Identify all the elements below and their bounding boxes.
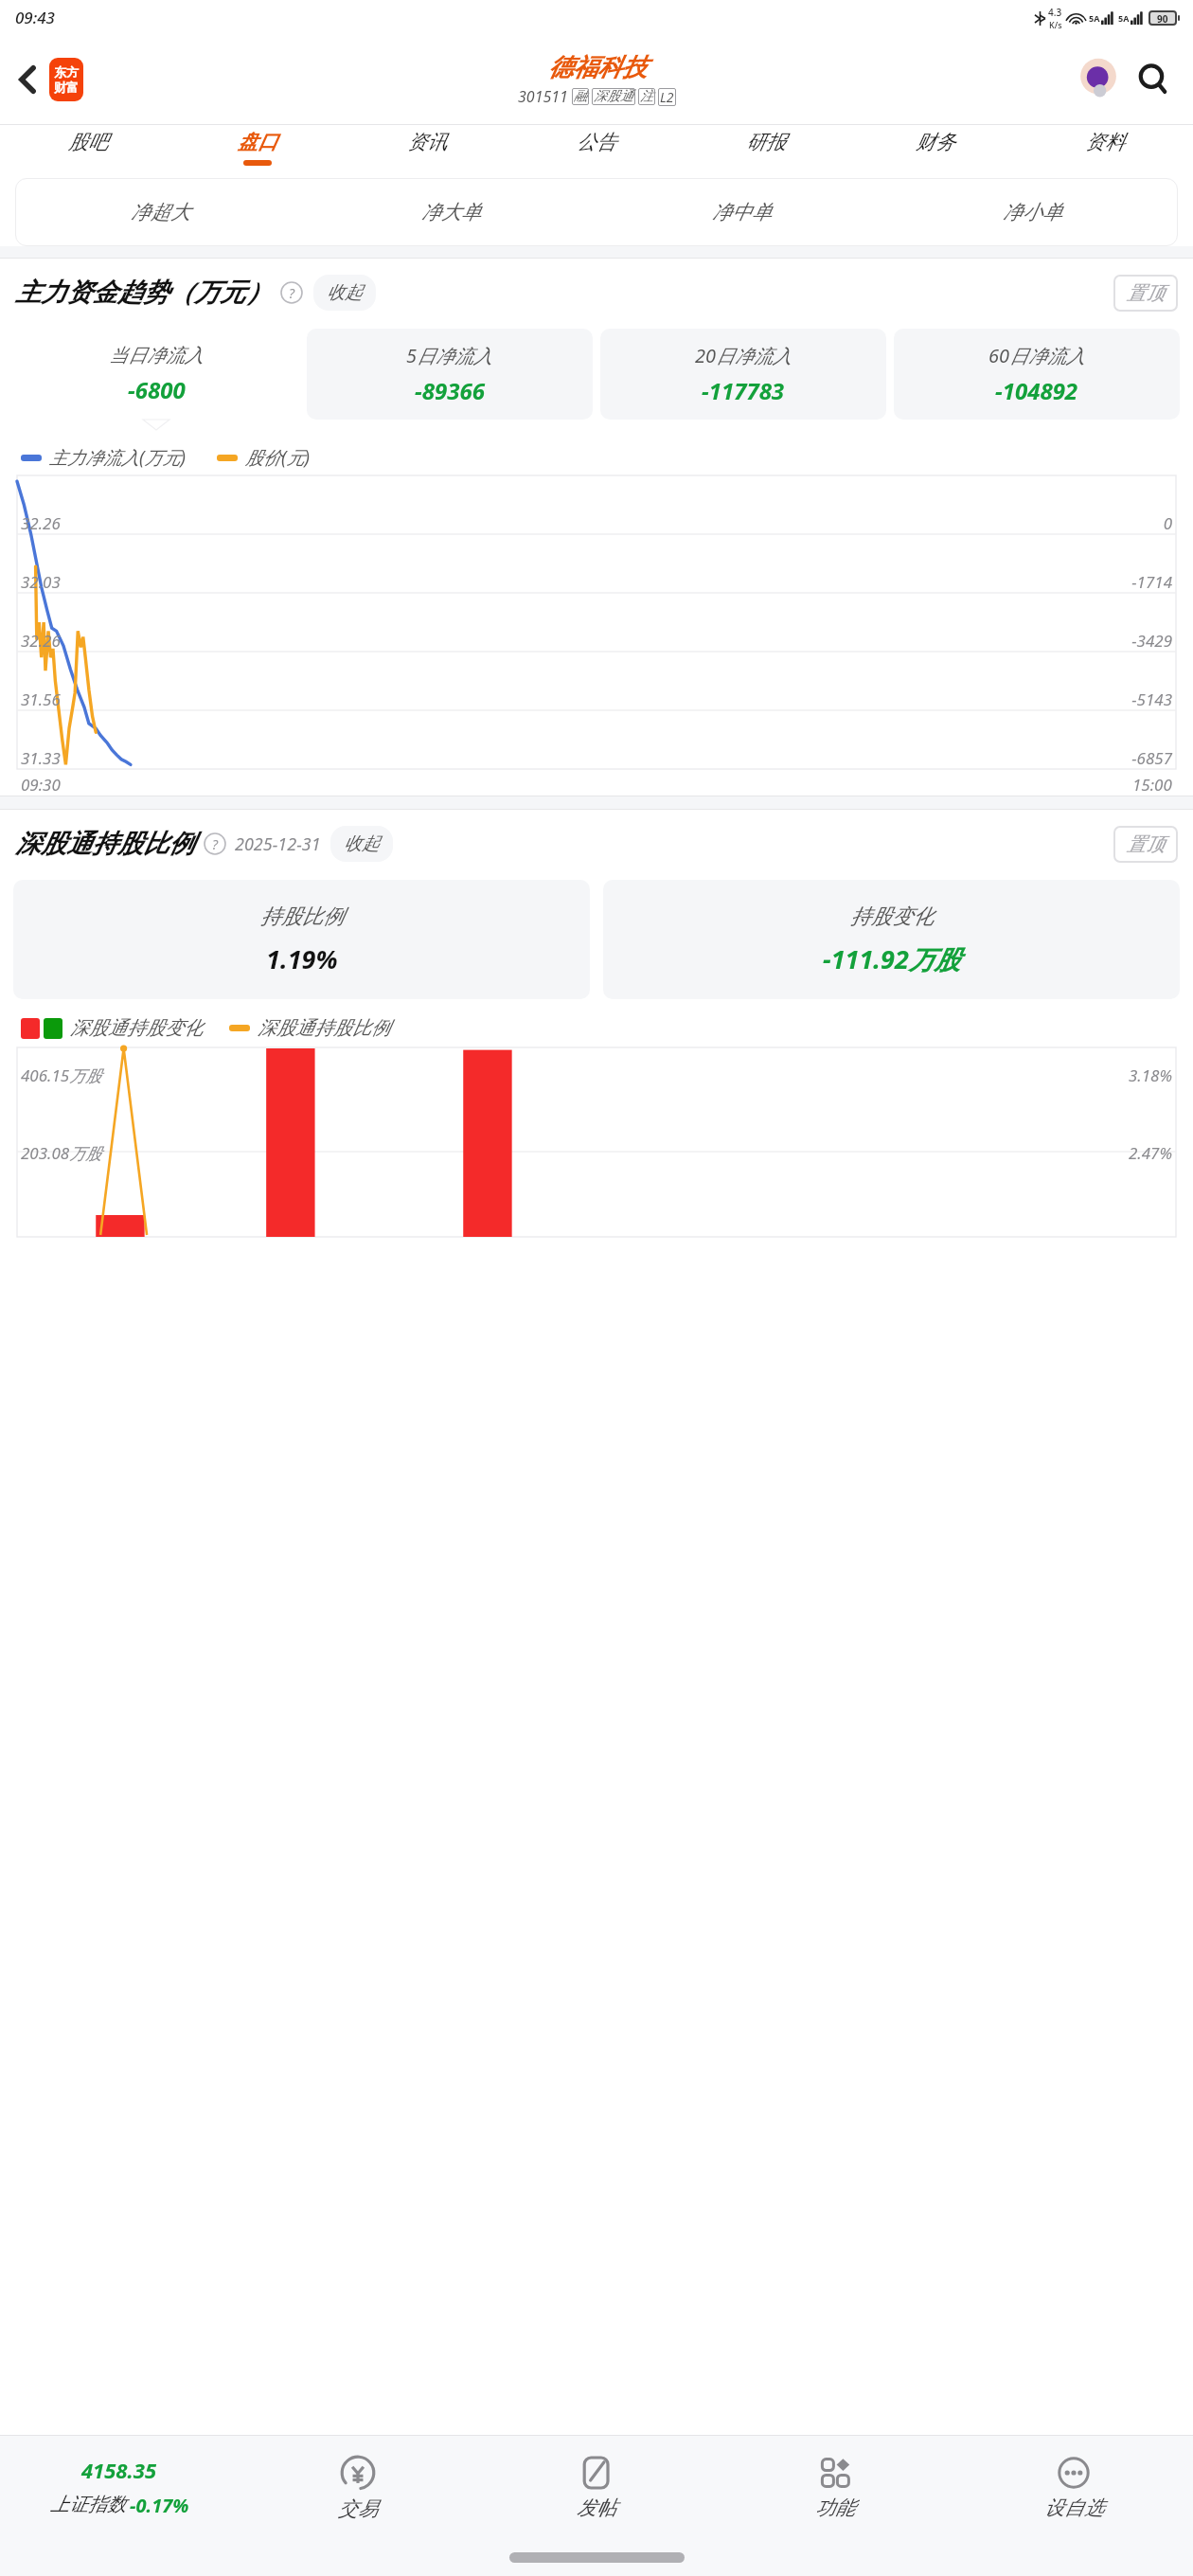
button[interactable]: 功能: [716, 2436, 954, 2538]
staticText: 4.3: [1048, 6, 1062, 19]
staticText: 交易: [338, 2496, 378, 2521]
staticText: 净小单: [1003, 200, 1062, 224]
button[interactable]: 盘口: [172, 125, 342, 178]
staticText: 2.47%: [1128, 1142, 1172, 1164]
button[interactable]: 资讯: [342, 125, 511, 178]
staticText: 研报: [746, 130, 786, 154]
staticText: 公告: [577, 130, 616, 154]
staticText: 5A: [1089, 12, 1100, 24]
staticText: 5日净流入: [406, 343, 493, 368]
button[interactable]: 收起: [313, 275, 376, 311]
staticText: -5143: [1131, 689, 1172, 710]
staticText: 持股比例: [260, 903, 344, 930]
staticText: 32.26: [21, 512, 61, 534]
staticText: 406.15万股: [21, 1064, 102, 1086]
button[interactable]: 5日净流入: [307, 329, 593, 420]
staticText: -111.92万股: [823, 941, 960, 976]
button[interactable]: 净小单: [887, 178, 1178, 246]
staticText: 置顶: [1127, 832, 1165, 856]
staticText: 3.18%: [1128, 1064, 1172, 1086]
staticText: 301511: [518, 86, 568, 107]
staticText: 东方: [54, 64, 79, 80]
staticText: 2025-12-31: [235, 832, 321, 856]
staticText: 主力资金趋势（万元）: [15, 277, 271, 309]
button[interactable]: 发帖: [477, 2436, 716, 2538]
staticText: 15:00: [1132, 774, 1172, 796]
staticText: 德福科技: [548, 52, 647, 83]
staticText: -117783: [702, 375, 785, 406]
staticText: 资讯: [407, 130, 447, 154]
staticText: 主力净流入(万元): [49, 445, 187, 470]
button[interactable]: 资料: [1020, 125, 1189, 178]
button[interactable]: 置顶: [1113, 275, 1178, 312]
button[interactable]: Assistant: [1076, 57, 1121, 102]
staticText: 31.33: [21, 747, 61, 769]
staticText: -3429: [1131, 630, 1172, 652]
button[interactable]: 持股变化: [603, 880, 1180, 999]
staticText: 股价(元): [245, 445, 311, 470]
button[interactable]: 净中单: [596, 178, 887, 246]
button[interactable]: 净大单: [306, 178, 596, 246]
staticText: 32.26: [21, 630, 61, 652]
button[interactable]: Search: [1131, 57, 1176, 102]
staticText: 持股变化: [850, 903, 934, 930]
staticText: 深股通持股变化: [70, 1016, 203, 1040]
button[interactable]: Help: [203, 832, 227, 856]
staticText: 功能: [815, 2495, 855, 2520]
staticText: -1714: [1131, 571, 1172, 593]
staticText: 90: [1157, 12, 1168, 24]
staticText: 融: [574, 88, 587, 105]
staticText: 收起: [344, 832, 380, 855]
button[interactable]: 60日净流入: [894, 329, 1180, 420]
button[interactable]: 股吧: [4, 125, 172, 178]
staticText: 发帖: [577, 2495, 616, 2520]
button[interactable]: 公告: [511, 125, 681, 178]
staticText: -104892: [995, 375, 1078, 406]
staticText: 4158.35: [81, 2456, 157, 2484]
staticText: 60日净流入: [988, 343, 1086, 368]
staticText: 财富: [54, 80, 79, 95]
button[interactable]: 置顶: [1113, 826, 1178, 863]
staticText: 09:30: [21, 774, 61, 796]
staticText: 203.08万股: [21, 1142, 102, 1164]
button[interactable]: 设自选: [954, 2436, 1193, 2538]
button[interactable]: 20日净流入: [600, 329, 886, 420]
staticText: -0.17%: [130, 2493, 189, 2518]
other: Back: [17, 63, 38, 97]
staticText: 20日净流入: [695, 343, 792, 368]
button[interactable]: 收起: [330, 826, 393, 862]
button[interactable]: 当日净流入: [13, 329, 299, 420]
staticText: 净超大: [131, 200, 190, 224]
staticText: 0: [1163, 512, 1172, 534]
staticText: 财务: [916, 130, 955, 154]
staticText: 深股通持股比例: [15, 828, 194, 860]
staticText: 收起: [327, 281, 363, 304]
button[interactable]: Help: [279, 280, 304, 305]
button[interactable]: 净超大: [15, 178, 306, 246]
staticText: ?: [212, 835, 219, 853]
staticText: 设自选: [1044, 2495, 1104, 2520]
staticText: -6800: [128, 374, 186, 405]
button[interactable]: 研报: [681, 125, 850, 178]
button[interactable]: 4158.35: [0, 2436, 239, 2538]
button[interactable]: 财务: [850, 125, 1020, 178]
button[interactable]: Back: [13, 54, 87, 105]
staticText: 1.19%: [266, 941, 338, 976]
staticText: 资料: [1085, 130, 1125, 154]
button[interactable]: 交易: [239, 2436, 477, 2538]
staticText: 09:43: [15, 7, 55, 28]
staticText: 5A: [1118, 12, 1130, 24]
staticText: 注: [640, 88, 653, 105]
staticText: 净大单: [421, 200, 481, 224]
staticText: 深股通持股比例: [258, 1016, 390, 1040]
staticText: K/s: [1049, 19, 1062, 30]
staticText: 上证指数: [50, 2493, 126, 2516]
button[interactable]: 持股比例: [13, 880, 590, 999]
staticText: ?: [289, 284, 295, 302]
staticText: 置顶: [1127, 281, 1165, 305]
staticText: -89366: [415, 375, 485, 406]
staticText: 当日净流入: [109, 344, 204, 367]
staticText: 股吧: [68, 130, 108, 154]
staticText: 盘口: [238, 130, 277, 154]
staticText: L2: [660, 88, 674, 106]
